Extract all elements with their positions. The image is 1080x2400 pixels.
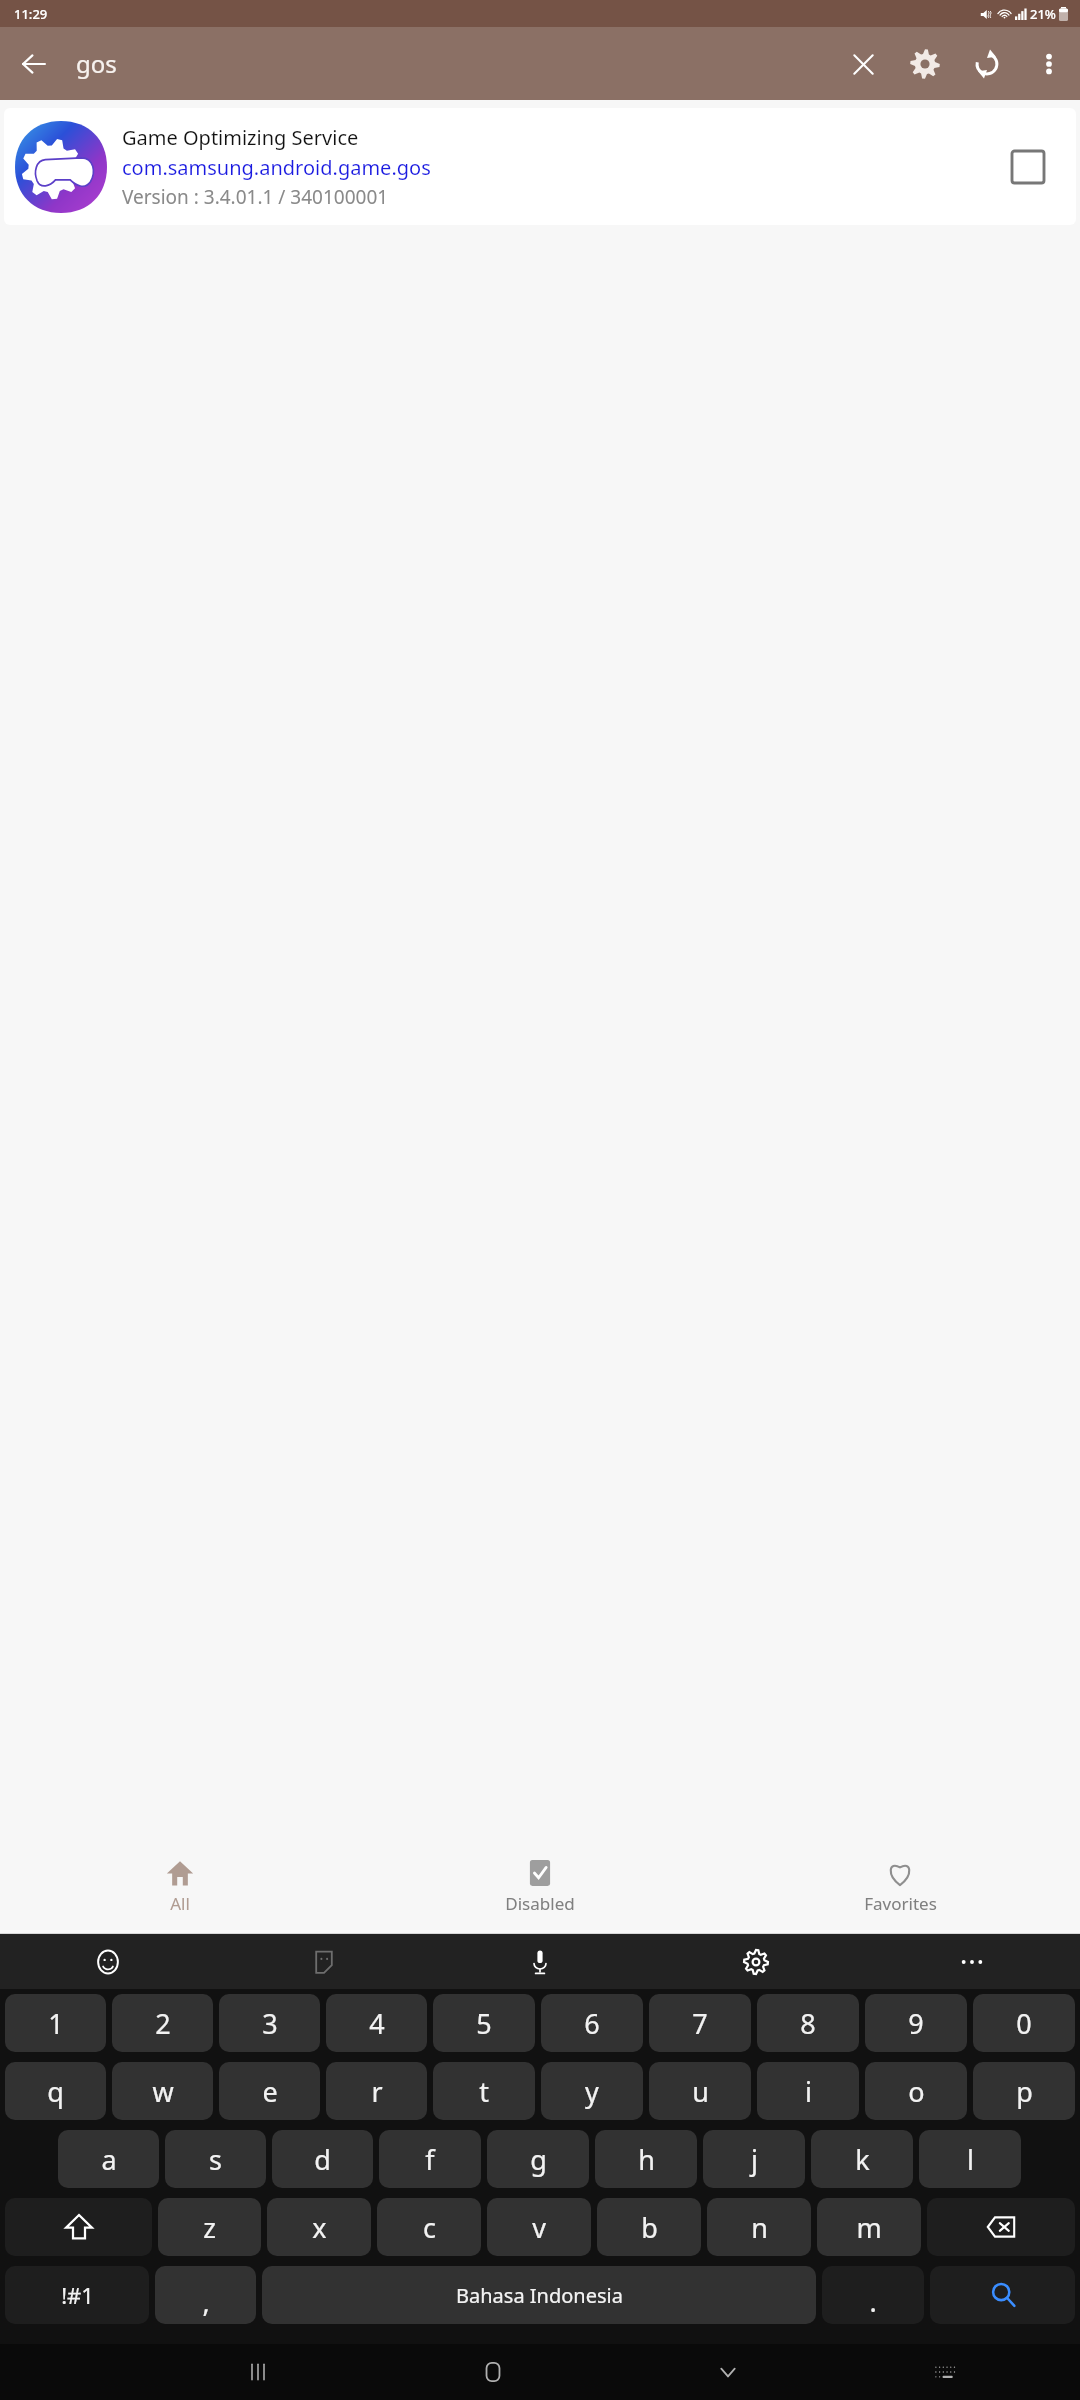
button[interactable]: w: [112, 2062, 213, 2120]
button[interactable]: Refresh: [956, 33, 1018, 95]
button[interactable]: 7: [649, 1994, 751, 2052]
staticText: m: [856, 2209, 882, 2246]
button[interactable]: z: [158, 2198, 261, 2256]
staticText: 4: [369, 2005, 385, 2042]
button[interactable]: 4: [326, 1994, 427, 2052]
button[interactable]: Clear: [832, 33, 894, 95]
button[interactable]: m: [817, 2198, 921, 2256]
staticText: 8: [800, 2005, 816, 2042]
button[interactable]: Voice input: [432, 1934, 648, 1989]
button[interactable]: 6: [541, 1994, 643, 2052]
staticText: d: [314, 2141, 331, 2178]
button[interactable]: ,: [155, 2266, 256, 2324]
staticText: z: [203, 2209, 216, 2246]
button[interactable]: a: [58, 2130, 159, 2188]
staticText: 3: [262, 2005, 278, 2042]
button[interactable]: Shift: [5, 2198, 152, 2256]
button[interactable]: Settings: [894, 33, 956, 95]
button[interactable]: Search: [930, 2266, 1075, 2324]
staticText: j: [751, 2141, 758, 2178]
button[interactable]: i: [757, 2062, 859, 2120]
button[interactable]: k: [811, 2130, 913, 2188]
button[interactable]: 0: [973, 1994, 1075, 2052]
staticText: 2: [155, 2005, 171, 2042]
button[interactable]: y: [541, 2062, 643, 2120]
staticText: .: [869, 2283, 877, 2320]
button[interactable]: !#1: [5, 2266, 149, 2324]
button[interactable]: e: [219, 2062, 320, 2120]
staticText: 9: [908, 2005, 924, 2042]
staticText: l: [967, 2141, 974, 2178]
button[interactable]: Emoji: [0, 1934, 216, 1989]
button[interactable]: Disabled: [360, 1841, 720, 1933]
button[interactable]: Hide keyboard: [610, 2344, 845, 2400]
staticText: o: [908, 2073, 925, 2110]
button[interactable]: u: [649, 2062, 751, 2120]
button[interactable]: 2: [112, 1994, 213, 2052]
button[interactable]: o: [865, 2062, 967, 2120]
button[interactable]: t: [433, 2062, 535, 2120]
button[interactable]: Home: [375, 2344, 610, 2400]
button[interactable]: l: [919, 2130, 1021, 2188]
staticText: p: [1016, 2073, 1033, 2110]
button[interactable]: All: [0, 1841, 360, 1933]
button[interactable]: Select app: [980, 108, 1076, 225]
button[interactable]: p: [973, 2062, 1075, 2120]
button[interactable]: h: [595, 2130, 697, 2188]
button[interactable]: More: [864, 1934, 1080, 1989]
button[interactable]: Keyboard settings: [648, 1934, 864, 1989]
staticText: 6: [584, 2005, 600, 2042]
button[interactable]: Stickers: [216, 1934, 432, 1989]
staticText: w: [152, 2073, 174, 2110]
button[interactable]: s: [165, 2130, 266, 2188]
button[interactable]: v: [487, 2198, 591, 2256]
staticText: gos: [76, 47, 832, 80]
button[interactable]: d: [272, 2130, 373, 2188]
staticText: n: [751, 2209, 768, 2246]
staticText: r: [371, 2073, 383, 2110]
button[interactable]: 3: [219, 1994, 320, 2052]
staticText: !#1: [61, 2280, 94, 2310]
button[interactable]: r: [326, 2062, 427, 2120]
staticText: 21%: [1030, 5, 1056, 23]
staticText: k: [855, 2141, 870, 2178]
button[interactable]: g: [487, 2130, 589, 2188]
staticText: t: [479, 2073, 489, 2110]
button[interactable]: b: [597, 2198, 701, 2256]
button[interactable]: n: [707, 2198, 811, 2256]
button[interactable]: f: [379, 2130, 481, 2188]
button[interactable]: Game Optimizing Service: [4, 108, 1076, 225]
button[interactable]: x: [267, 2198, 371, 2256]
staticText: Version : 3.4.01.1 / 340100001: [122, 184, 389, 210]
button[interactable]: Recents: [140, 2344, 375, 2400]
button[interactable]: c: [377, 2198, 481, 2256]
button[interactable]: Favorites: [720, 1841, 1080, 1933]
staticText: x: [312, 2209, 327, 2246]
staticText: i: [805, 2073, 812, 2110]
staticText: 11:29: [14, 5, 48, 23]
staticText: g: [530, 2141, 547, 2178]
staticText: ,: [202, 2283, 210, 2320]
button[interactable]: Bahasa Indonesia: [262, 2266, 816, 2324]
button[interactable]: 1: [5, 1994, 106, 2052]
staticText: 7: [692, 2005, 708, 2042]
button[interactable]: More options: [1018, 33, 1080, 95]
button[interactable]: Change keyboard: [845, 2344, 1045, 2400]
button[interactable]: Back: [0, 30, 68, 98]
staticText: h: [638, 2141, 655, 2178]
staticText: 1: [48, 2005, 64, 2042]
button[interactable]: 8: [757, 1994, 859, 2052]
button[interactable]: 9: [865, 1994, 967, 2052]
button[interactable]: j: [703, 2130, 805, 2188]
staticText: u: [692, 2073, 709, 2110]
staticText: Bahasa Indonesia: [456, 2282, 623, 2309]
staticText: All: [170, 1892, 190, 1915]
button[interactable]: 5: [433, 1994, 535, 2052]
button[interactable]: .: [822, 2266, 924, 2324]
staticText: b: [641, 2209, 658, 2246]
staticText: y: [585, 2073, 599, 2110]
staticText: c: [423, 2209, 436, 2246]
staticText: com.samsung.android.game.gos: [122, 154, 431, 181]
button[interactable]: Backspace: [927, 2198, 1075, 2256]
button[interactable]: q: [5, 2062, 106, 2120]
